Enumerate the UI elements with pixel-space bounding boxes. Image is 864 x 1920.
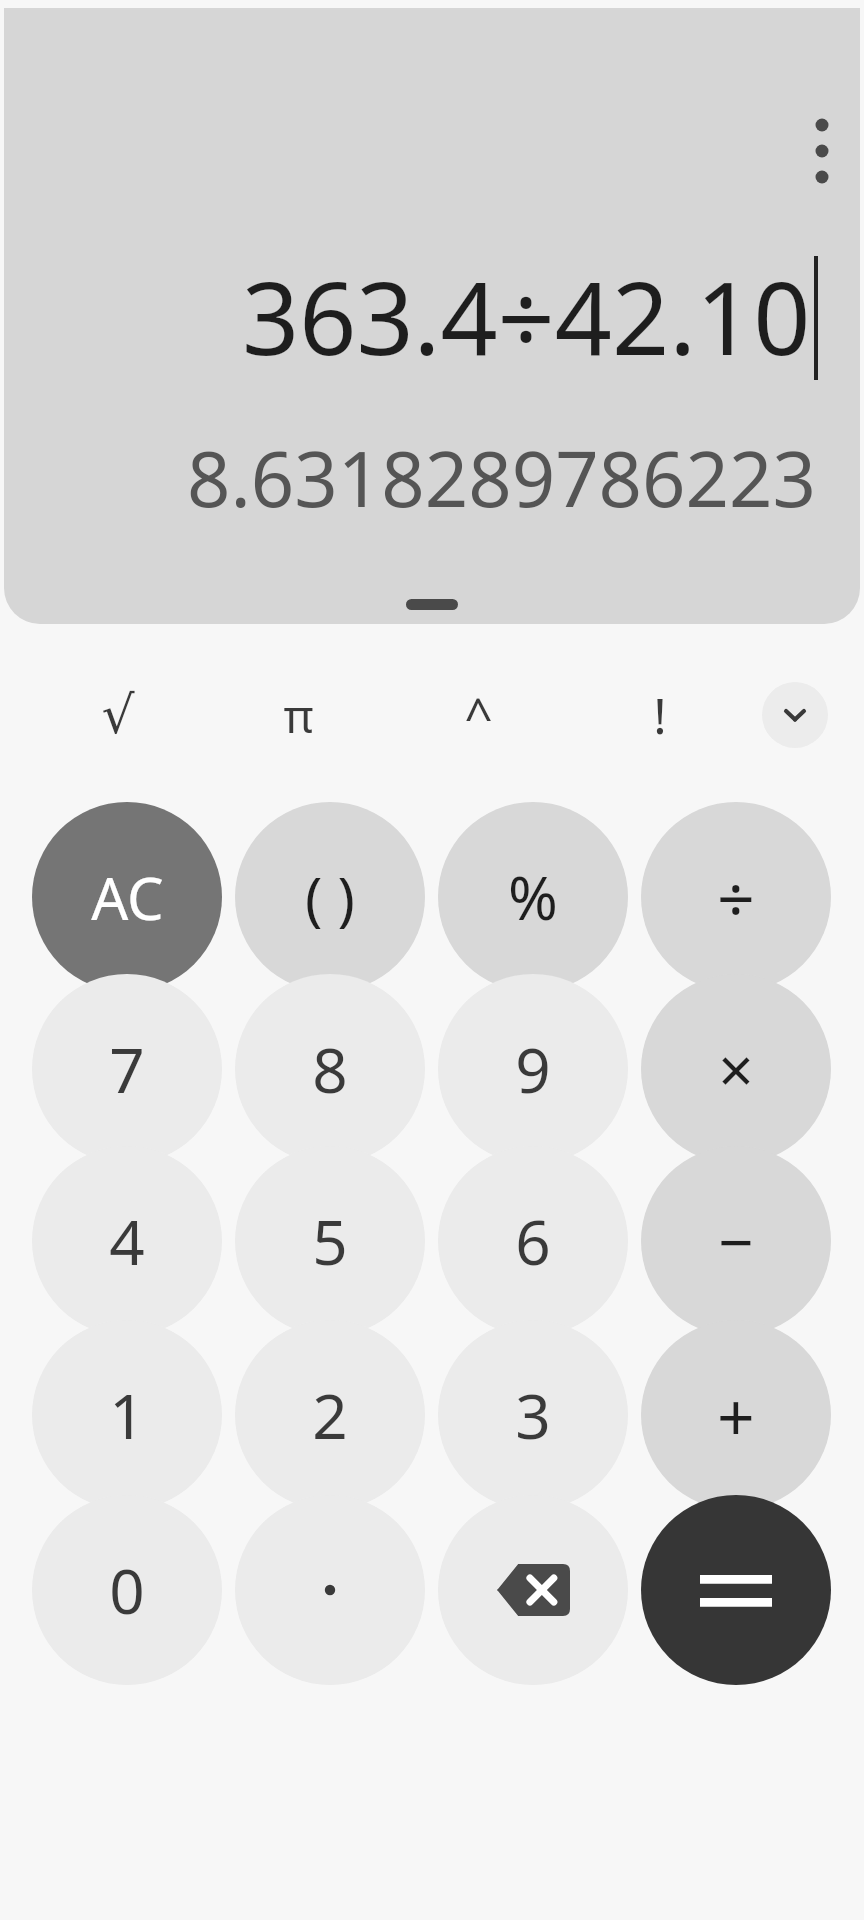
staticText: ×: [718, 1027, 754, 1111]
button[interactable]: √: [60, 656, 176, 774]
staticText: ÷: [717, 852, 755, 942]
button[interactable]: Decimal point: [235, 1495, 425, 1685]
staticText: π: [283, 684, 314, 747]
button[interactable]: ×: [641, 974, 831, 1164]
button[interactable]: ^: [420, 656, 536, 774]
staticText: 2: [312, 1373, 348, 1457]
button[interactable]: 8: [235, 974, 425, 1164]
staticText: +: [717, 1370, 755, 1460]
button[interactable]: 4: [32, 1146, 222, 1336]
staticText: 8.6318289786223: [187, 426, 816, 530]
staticText: 4: [109, 1199, 145, 1283]
button[interactable]: 5: [235, 1146, 425, 1336]
button[interactable]: π: [240, 656, 356, 774]
button[interactable]: ÷: [641, 802, 831, 992]
button[interactable]: %: [438, 802, 628, 992]
staticText: ^: [464, 681, 493, 749]
staticText: 363.4÷42.10: [242, 248, 811, 384]
staticText: 5: [312, 1199, 348, 1283]
button[interactable]: AC: [32, 802, 222, 992]
button[interactable]: ( ): [235, 802, 425, 992]
button[interactable]: −: [641, 1146, 831, 1336]
staticText: 1: [109, 1373, 145, 1457]
button[interactable]: Expand history: [406, 599, 458, 610]
button[interactable]: !: [602, 656, 718, 774]
staticText: 8: [312, 1027, 348, 1111]
staticText: ( ): [305, 858, 355, 937]
staticText: %: [508, 856, 558, 938]
button[interactable]: 2: [235, 1320, 425, 1510]
button[interactable]: More options: [762, 80, 860, 190]
button[interactable]: Collapse functions: [762, 682, 828, 748]
staticText: √: [101, 685, 135, 746]
button[interactable]: 1: [32, 1320, 222, 1510]
button[interactable]: Backspace: [438, 1495, 628, 1685]
button[interactable]: 0: [32, 1495, 222, 1685]
button[interactable]: 6: [438, 1146, 628, 1336]
staticText: 6: [515, 1199, 551, 1283]
staticText: 3: [515, 1373, 551, 1457]
button[interactable]: 7: [32, 974, 222, 1164]
staticText: −: [718, 1199, 754, 1283]
staticText: 7: [109, 1027, 145, 1111]
staticText: 9: [515, 1027, 551, 1111]
staticText: 0: [109, 1548, 145, 1632]
staticText: AC: [91, 858, 164, 937]
button[interactable]: 3: [438, 1320, 628, 1510]
button[interactable]: 9: [438, 974, 628, 1164]
staticText: !: [653, 681, 667, 749]
button[interactable]: Equals: [641, 1495, 831, 1685]
button[interactable]: +: [641, 1320, 831, 1510]
